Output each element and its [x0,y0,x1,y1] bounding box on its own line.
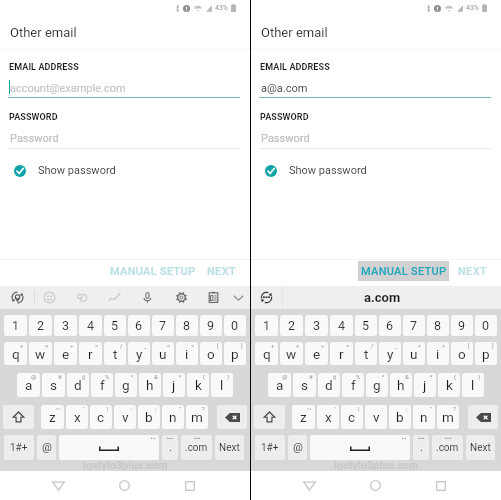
button[interactable]: 1 [255,315,278,336]
button[interactable]: a.com [283,286,501,309]
button[interactable]: Show password [0,160,250,181]
button[interactable]: / [104,342,126,365]
button[interactable]: Handwriting [101,286,127,309]
button[interactable]: .com [181,435,212,460]
button[interactable]: ` [66,405,88,429]
button[interactable]: < [152,342,174,365]
button[interactable]: Next [215,435,244,460]
button[interactable]: _ [128,342,150,365]
button[interactable]: × [29,342,52,365]
button[interactable]: 3 [54,315,77,336]
button[interactable]: [ [451,342,473,365]
button[interactable]: @ [17,373,40,397]
button[interactable]: > [176,342,198,365]
button[interactable]: 6 [379,315,401,336]
button[interactable]: 1 [4,315,27,336]
button[interactable]: Other email [0,0,250,48]
button[interactable]: Keyboard settings [168,286,194,309]
button[interactable]: Stickers [69,286,95,309]
button[interactable]: @ [37,435,56,460]
button[interactable]: Switch input method [251,286,282,309]
button[interactable]: . [162,435,178,460]
button[interactable]: Shift [254,405,285,429]
button[interactable]: # [42,373,65,397]
button[interactable]: Backspace [468,405,498,429]
button[interactable]: ; [389,405,411,429]
button[interactable]: ? [186,405,208,429]
button[interactable]: " [413,405,435,429]
button[interactable]: % [91,373,113,397]
button[interactable]: 8 [176,315,198,336]
button[interactable]: 9 [200,315,222,336]
button[interactable]: ) [462,373,484,397]
button[interactable]: + [4,342,27,365]
button[interactable]: 7 [403,315,425,336]
button[interactable]: % [342,373,364,397]
button[interactable]: Next [466,435,495,460]
button[interactable]: NEXT [204,261,238,281]
button[interactable]: ( [187,373,209,397]
button[interactable]: 5 [355,315,377,336]
button[interactable]: 3 [305,315,328,336]
button[interactable]: Back [44,471,73,500]
button[interactable]: 1#+ [4,435,34,460]
button[interactable]: & [390,373,412,397]
button[interactable]: 0 [224,315,246,336]
button[interactable]: [ [200,342,222,365]
button[interactable]: Shift [3,405,34,429]
button[interactable]: : [365,405,387,429]
button[interactable]: ~ [292,405,315,429]
button[interactable]: Emoji [36,286,62,309]
button[interactable]: 7 [152,315,174,336]
button[interactable]: Voice typing [4,286,30,309]
button[interactable]: | [341,405,363,429]
button[interactable]: : [114,405,136,429]
button[interactable]: MANUAL SETUP [358,261,449,281]
button[interactable]: @ [288,435,307,460]
button[interactable]: " [162,405,184,429]
button[interactable]: × [280,342,303,365]
button[interactable]: 8 [427,315,449,336]
button[interactable]: & [139,373,161,397]
button[interactable]: Show password [251,160,501,181]
button[interactable]: 4 [79,315,102,336]
button[interactable]: + [255,342,278,365]
button[interactable]: Recent apps [426,471,455,500]
button[interactable]: Back [295,471,324,500]
button[interactable]: Backspace [217,405,247,429]
button[interactable]: 6 [128,315,150,336]
button[interactable]: * [414,373,436,397]
button[interactable]: 1#+ [255,435,285,460]
button[interactable]: ^ [366,373,388,397]
button[interactable]: Home [361,471,390,500]
button[interactable]: 2 [280,315,303,336]
button[interactable]: Space [59,435,159,460]
button[interactable]: Microphone [134,286,160,309]
button[interactable]: Other email [251,0,501,48]
button[interactable]: NEXT [455,261,489,281]
button[interactable]: 4 [330,315,353,336]
button[interactable]: 2 [29,315,52,336]
button[interactable]: ) [211,373,233,397]
button[interactable]: . [413,435,429,460]
button[interactable]: $ [318,373,340,397]
button[interactable]: Recent apps [175,471,204,500]
button[interactable]: ] [475,342,497,365]
button[interactable]: ; [138,405,160,429]
button[interactable]: 0 [475,315,497,336]
button[interactable]: $ [67,373,89,397]
button[interactable]: ` [317,405,339,429]
button[interactable]: = [330,342,353,365]
button[interactable]: Home [110,471,139,500]
button[interactable]: < [403,342,425,365]
button[interactable]: _ [379,342,401,365]
button[interactable]: ? [437,405,459,429]
button[interactable]: Space [310,435,410,460]
button[interactable]: ÷ [54,342,77,365]
button[interactable]: @ [268,373,291,397]
button[interactable]: / [355,342,377,365]
button[interactable]: = [79,342,102,365]
button[interactable]: MANUAL SETUP [107,261,198,281]
button[interactable]: ÷ [305,342,328,365]
button[interactable]: 5 [104,315,126,336]
